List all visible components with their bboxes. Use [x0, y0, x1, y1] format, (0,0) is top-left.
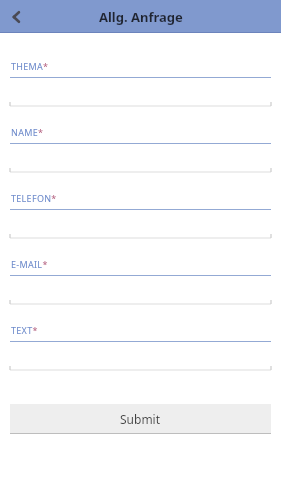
button[interactable] [0, 144, 281, 173]
staticText: Submit [120, 411, 161, 427]
staticText: TELEFON* [11, 192, 57, 204]
staticText: NAME* [11, 126, 44, 138]
button[interactable]: Submit [10, 404, 271, 433]
staticText: THEMA* [11, 60, 49, 72]
button[interactable]: Back [0, 0, 34, 33]
button[interactable] [0, 276, 281, 305]
button[interactable] [0, 342, 281, 371]
staticText: TEXT* [11, 324, 38, 336]
button[interactable] [0, 210, 281, 239]
staticText: Allg. Anfrage [99, 8, 183, 26]
button[interactable] [0, 78, 281, 107]
staticText: E-MAIL* [11, 258, 48, 270]
